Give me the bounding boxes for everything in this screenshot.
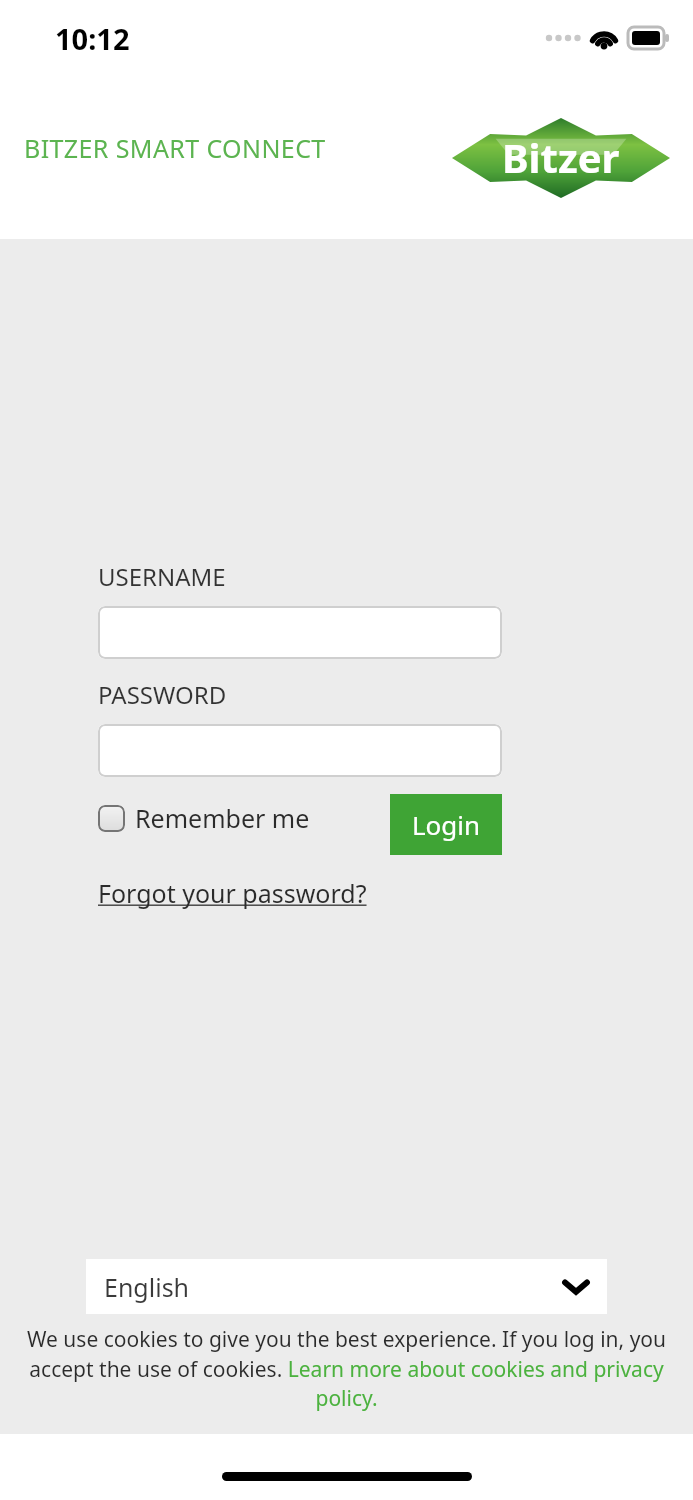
button[interactable]: Forgot your password? xyxy=(98,876,367,910)
other: Expand language list xyxy=(563,1279,589,1295)
staticText: Login xyxy=(412,807,481,842)
staticText: Bitzer xyxy=(502,130,620,184)
staticText: Remember me xyxy=(135,801,310,835)
staticText: PASSWORD xyxy=(98,678,227,711)
button[interactable]: Login xyxy=(390,794,502,855)
staticText: We use cookies to give you the best expe… xyxy=(4,1325,689,1412)
staticText: English xyxy=(104,1270,190,1304)
button[interactable]: English xyxy=(86,1259,607,1314)
staticText: USERNAME xyxy=(98,560,226,593)
button[interactable] xyxy=(98,724,502,777)
button[interactable] xyxy=(98,606,502,659)
staticText: Forgot your password? xyxy=(98,876,367,910)
staticText: BITZER SMART CONNECT xyxy=(24,131,326,165)
staticText: 10:12 xyxy=(55,19,130,58)
button[interactable]: Remember me xyxy=(98,801,318,835)
